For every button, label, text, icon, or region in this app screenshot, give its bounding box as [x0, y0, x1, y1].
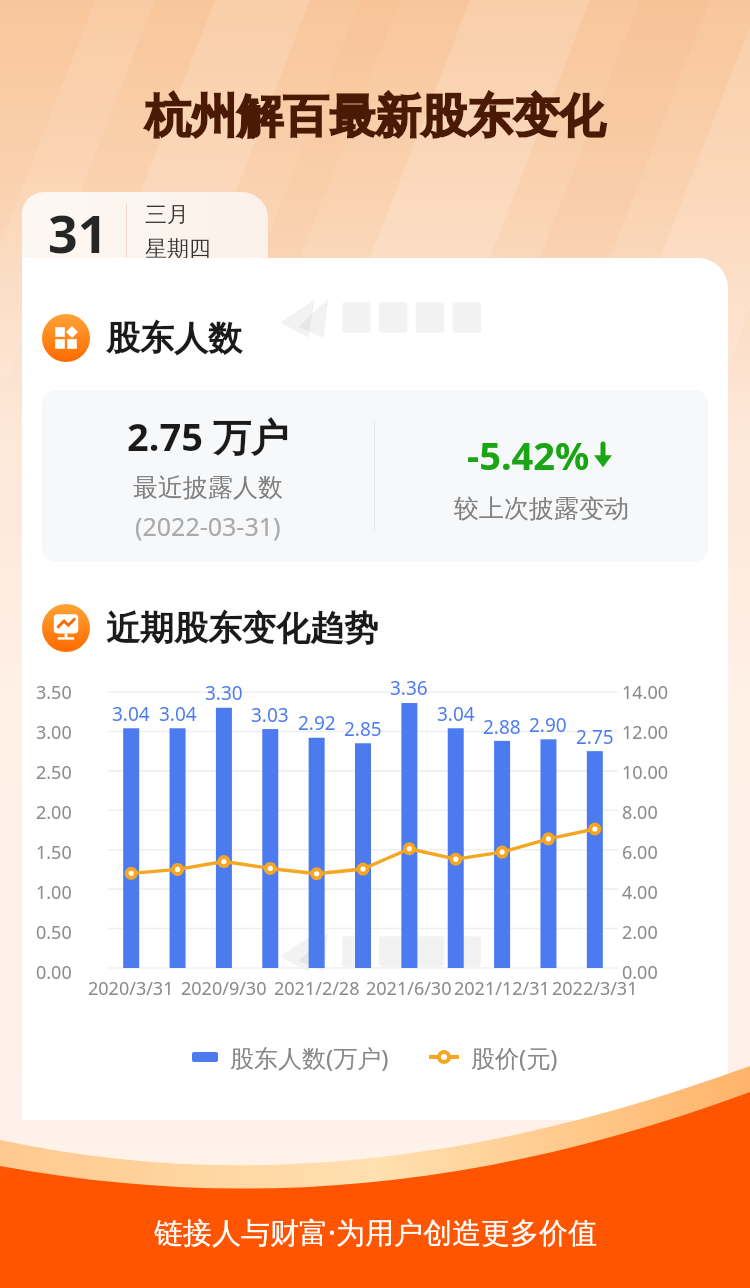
- staticText: 股东人数(万户): [230, 1041, 389, 1074]
- staticText: 3.30: [205, 680, 243, 706]
- staticText: 星期四: [145, 235, 211, 263]
- staticText: 股价(元): [471, 1041, 558, 1074]
- staticText: 杭州解百最新股东变化: [145, 88, 605, 146]
- staticText: 4.00: [622, 880, 658, 905]
- staticText: 10.00: [622, 760, 669, 785]
- other: 股东人数: [42, 314, 90, 362]
- staticText: 2.90: [529, 712, 567, 738]
- staticText: 2.00: [36, 800, 72, 825]
- staticText: 8.00: [622, 800, 658, 825]
- staticText: 近期股东变化趋势: [106, 607, 378, 650]
- staticText: 3.04: [112, 701, 150, 727]
- staticText: 12.00: [622, 720, 669, 745]
- staticText: 3.03: [251, 702, 289, 728]
- staticText: 2.88: [483, 714, 521, 740]
- staticText: 股东人数: [106, 317, 242, 360]
- staticText: 链接人与财富·为用户创造更多价值: [154, 1212, 597, 1252]
- staticText: 2021/2/28: [274, 976, 360, 1001]
- staticText: 2.50: [36, 760, 72, 785]
- staticText: 2.85: [344, 716, 382, 742]
- button[interactable]: 2.75 万户: [42, 390, 708, 562]
- staticText: 0.00: [622, 960, 658, 985]
- staticText: 较上次披露变动: [454, 493, 629, 524]
- staticText: 31: [48, 197, 108, 268]
- staticText: 14.00: [622, 680, 669, 705]
- staticText: 3.04: [159, 701, 197, 727]
- staticText: 2020/9/30: [181, 976, 267, 1001]
- staticText: 最近披露人数: [133, 472, 283, 503]
- button[interactable]: 近期股东变化趋势: [42, 604, 728, 652]
- button[interactable]: 股东人数: [42, 314, 728, 362]
- staticText: 3.04: [437, 701, 475, 727]
- staticText: 3.00: [36, 720, 72, 745]
- other: 近期股东变化趋势: [42, 604, 90, 652]
- staticText: 2022/3/31: [552, 976, 638, 1001]
- staticText: 2020/3/31: [88, 976, 174, 1001]
- staticText: 2021/12/31: [454, 976, 550, 1001]
- staticText: 0.50: [36, 920, 72, 945]
- staticText: 1.00: [36, 880, 72, 905]
- staticText: 2.92: [298, 710, 336, 736]
- staticText: 0.00: [36, 960, 72, 985]
- staticText: (2022-03-31): [135, 509, 281, 543]
- staticText: -5.42%: [467, 429, 590, 481]
- staticText: 6.00: [622, 840, 658, 865]
- staticText: 2.00: [622, 920, 658, 945]
- staticText: 2.75 万户: [127, 410, 289, 462]
- staticText: 1.50: [36, 840, 72, 865]
- staticText: 三月: [145, 201, 189, 229]
- staticText: 3.36: [390, 675, 428, 701]
- staticText: 2.75: [576, 724, 614, 750]
- staticText: 3.50: [36, 680, 72, 705]
- staticText: 2021/6/30: [366, 976, 452, 1001]
